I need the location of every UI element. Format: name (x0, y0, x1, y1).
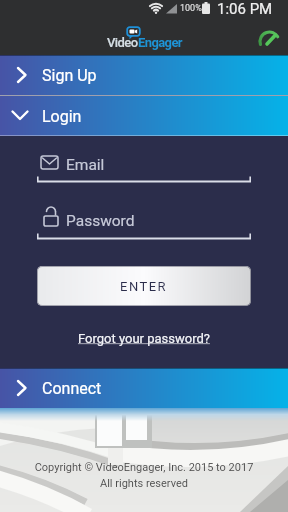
staticText: Video (107, 35, 138, 50)
button[interactable]: Forgot your password? (78, 331, 210, 346)
button[interactable]: Connect (0, 368, 288, 408)
staticText: Sign Up (42, 66, 97, 85)
staticText: Copyright © VideoEngager, Inc. 2015 to 2… (0, 461, 288, 474)
staticText: Connect (42, 379, 102, 398)
staticText: 100% (180, 3, 202, 14)
staticText: Engager (138, 35, 182, 50)
button[interactable]: Login (0, 96, 288, 136)
staticText: All rights reserved (0, 477, 288, 490)
staticText: Password (66, 212, 135, 230)
staticText: 1:06 PM (217, 0, 273, 18)
staticText: Email (66, 156, 105, 174)
button[interactable]: Sign Up (0, 55, 288, 95)
staticText: Login (42, 107, 82, 126)
staticText: ENTER (120, 279, 168, 294)
button[interactable]: ENTER (37, 266, 251, 306)
